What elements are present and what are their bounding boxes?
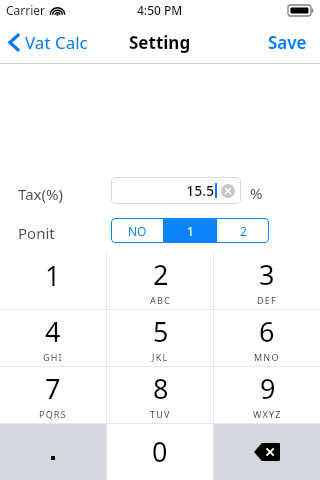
button[interactable]: NO: [111, 218, 163, 243]
button[interactable]: 2: [107, 253, 213, 309]
staticText: Setting: [129, 31, 191, 54]
button[interactable]: Delete: [214, 424, 320, 480]
staticText: Vat Calc: [25, 31, 88, 54]
button[interactable]: 2: [217, 218, 269, 243]
button[interactable]: 3: [214, 253, 320, 309]
staticText: 7: [45, 370, 61, 407]
staticText: PQRS: [39, 408, 67, 420]
button[interactable]: 0: [107, 424, 213, 480]
staticText: 3: [259, 256, 275, 293]
staticText: ABC: [150, 294, 171, 306]
staticText: Carrier: [6, 2, 46, 18]
staticText: %: [250, 183, 263, 203]
button[interactable]: Clear text: [221, 184, 235, 198]
button[interactable]: 5: [107, 310, 213, 366]
staticText: 15.5: [111, 181, 214, 200]
button[interactable]: 7: [0, 367, 106, 423]
button[interactable]: 4: [0, 310, 106, 366]
staticText: 9: [260, 370, 276, 407]
button[interactable]: 15.5: [111, 177, 241, 204]
staticText: 1: [45, 257, 61, 294]
button[interactable]: 1: [164, 218, 216, 243]
staticText: 1: [187, 223, 194, 239]
button[interactable]: 8: [107, 367, 213, 423]
staticText: 0: [152, 433, 168, 470]
button[interactable]: 9: [214, 367, 320, 423]
staticText: 2: [240, 223, 247, 239]
staticText: TUV: [150, 408, 171, 420]
staticText: 8: [153, 370, 169, 407]
staticText: 4:50 PM: [137, 2, 183, 18]
staticText: 6: [259, 313, 275, 350]
button[interactable]: [0, 424, 106, 480]
staticText: GHI: [43, 351, 63, 363]
staticText: 2: [153, 256, 169, 293]
staticText: JKL: [152, 351, 169, 363]
staticText: NO: [128, 223, 147, 239]
staticText: MNO: [254, 351, 280, 363]
staticText: 5: [153, 313, 169, 350]
button[interactable]: Vat Calc: [7, 27, 90, 58]
staticText: 4: [45, 313, 61, 350]
button[interactable]: 1: [0, 253, 106, 309]
staticText: DEF: [257, 294, 277, 306]
staticText: Tax(%): [18, 184, 63, 204]
button[interactable]: 6: [214, 310, 320, 366]
staticText: WXYZ: [253, 408, 282, 420]
staticText: Ponit: [18, 223, 55, 243]
button[interactable]: Save: [265, 26, 310, 59]
staticText: Save: [268, 31, 307, 54]
